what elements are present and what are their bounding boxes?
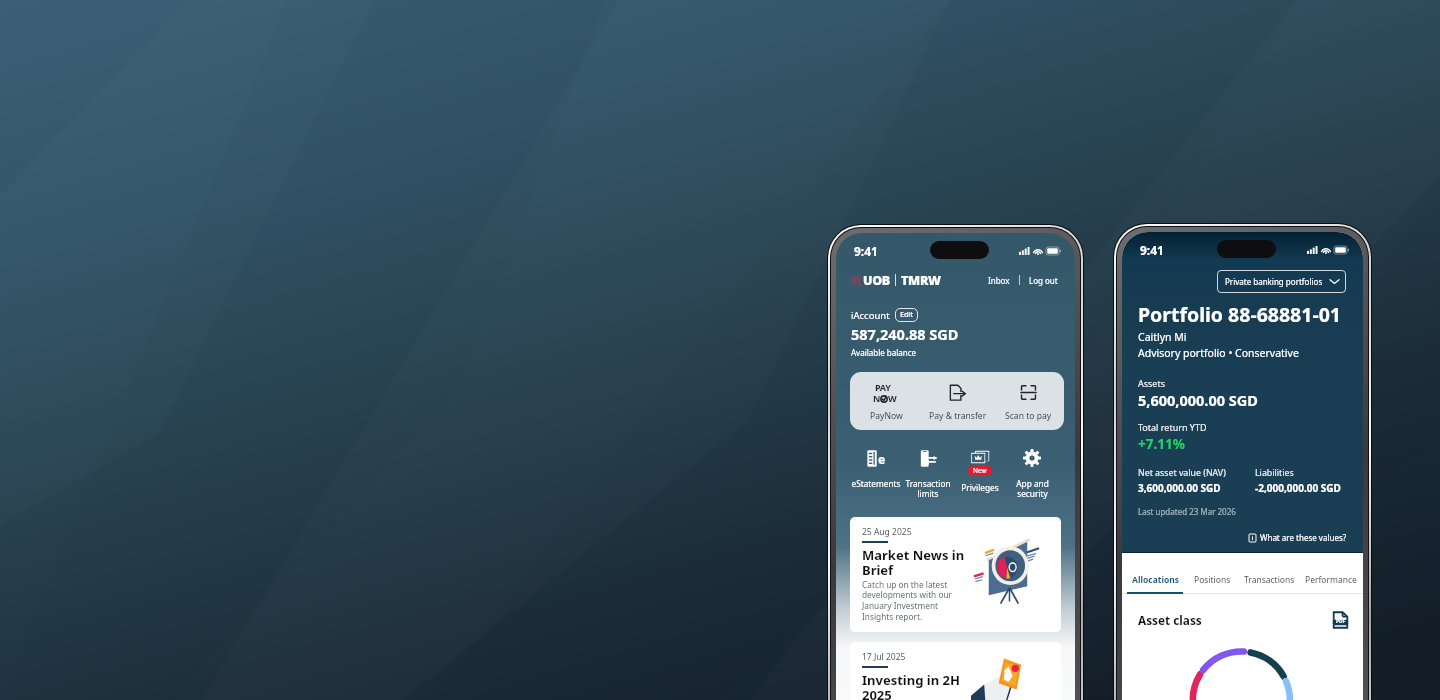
staticText: 9:41 <box>1140 242 1164 258</box>
staticText: 17 Jul 2025 <box>862 651 906 663</box>
staticText: 3,600,000.00 SGD <box>1138 481 1221 495</box>
staticText: 9:41 <box>854 243 878 259</box>
staticText: Investing in 2H 2025 <box>862 671 960 700</box>
staticText: Asset class <box>1138 612 1202 628</box>
staticText: UOB <box>863 272 890 288</box>
staticText: Advisory portfolio • Conservative <box>1138 346 1299 360</box>
staticText: PayNow <box>870 410 903 422</box>
staticText: Inbox <box>988 275 1010 286</box>
staticText: Portfolio 88-68881-01 <box>1138 301 1341 328</box>
button[interactable]: e <box>849 447 902 489</box>
button[interactable]: Transaction limits <box>902 447 954 500</box>
staticText: Scan to pay <box>1005 410 1052 422</box>
staticText: Allocations <box>1132 574 1180 586</box>
staticText: -2,000,000.00 SGD <box>1255 481 1341 495</box>
button[interactable]: Performance <box>1300 566 1361 594</box>
button[interactable]: Download PDF <box>1332 611 1349 629</box>
staticText: New <box>973 466 987 475</box>
staticText: Private banking portfolios <box>1225 276 1323 287</box>
button[interactable]: Inbox <box>986 275 1012 286</box>
staticText: Log out <box>1029 275 1058 286</box>
button[interactable]: App and security <box>1006 447 1058 500</box>
staticText: Positions <box>1194 574 1231 586</box>
staticText: Market News in Brief <box>862 546 965 579</box>
staticText: PAY <box>875 381 891 393</box>
button[interactable]: New <box>954 447 1006 493</box>
staticText: Privileges <box>961 482 999 493</box>
button[interactable]: Edit <box>895 308 918 322</box>
staticText: Total return YTD <box>1138 421 1207 433</box>
staticText: +7.11% <box>1138 435 1185 453</box>
staticText: Performance <box>1305 574 1357 586</box>
staticText: Caitlyn Mi <box>1138 330 1187 344</box>
staticText: Last updated 23 Mar 2026 <box>1138 506 1236 517</box>
button[interactable]: PAY <box>850 372 922 430</box>
staticText: Assets <box>1138 377 1166 389</box>
staticText: What are these values? <box>1260 532 1347 543</box>
staticText: e <box>878 451 886 467</box>
button[interactable]: Transactions <box>1239 566 1300 594</box>
staticText: PDF <box>1336 618 1346 625</box>
staticText: Pay & transfer <box>929 410 987 422</box>
staticText: Available balance <box>851 347 917 358</box>
button[interactable]: Allocations <box>1127 566 1185 594</box>
staticText: Edit <box>900 310 913 320</box>
button[interactable]: Positions <box>1185 566 1239 594</box>
button[interactable]: Scan to pay <box>993 372 1064 430</box>
staticText: W <box>888 392 897 404</box>
button[interactable]: 17 Jul 2025 <box>850 642 1061 700</box>
staticText: Transaction limits <box>905 478 951 500</box>
staticText: N <box>873 392 881 404</box>
staticText: Transactions <box>1244 574 1295 586</box>
button[interactable]: 25 Aug 2025 <box>850 517 1061 632</box>
staticText: App and security <box>1016 478 1049 500</box>
staticText: TMRW <box>901 272 941 288</box>
staticText: Net asset value (NAV) <box>1138 467 1226 479</box>
staticText: 587,240.88 SGD <box>851 324 959 344</box>
staticText: iAccount <box>851 309 890 322</box>
button[interactable]: Private banking portfolios <box>1217 270 1346 293</box>
button[interactable]: What are these values? <box>1122 532 1363 543</box>
button[interactable]: Pay & transfer <box>922 372 993 430</box>
button[interactable]: Log out <box>1027 275 1060 286</box>
staticText: 5,600,000.00 SGD <box>1138 390 1258 410</box>
staticText: eStatements <box>851 478 901 489</box>
staticText: Catch up on the latest developments with… <box>862 579 952 623</box>
staticText: Liabilities <box>1255 467 1294 479</box>
staticText: 25 Aug 2025 <box>862 526 912 538</box>
